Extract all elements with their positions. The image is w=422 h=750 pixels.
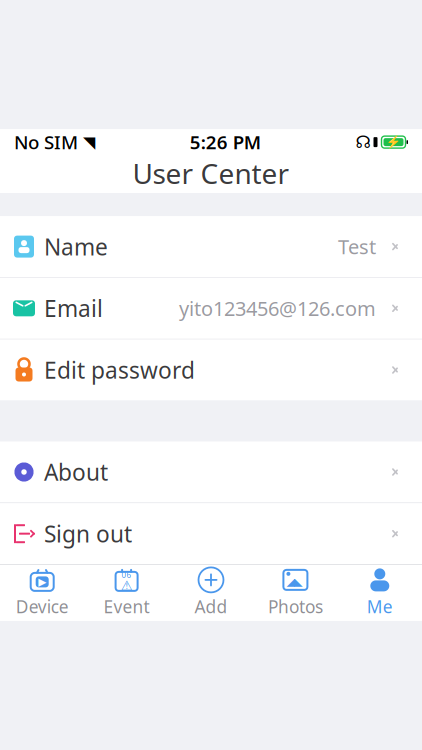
staticText: About: [44, 457, 108, 487]
button[interactable]: ◢◣: [253, 563, 338, 623]
staticText: Test: [338, 233, 376, 260]
staticText: yito123456@126.com: [179, 295, 376, 322]
button[interactable]: Sign out: [0, 503, 422, 564]
staticText: Add: [194, 595, 227, 618]
staticText: Sign out: [44, 519, 132, 549]
staticText: Name: [44, 231, 108, 262]
button[interactable]: ▶: [0, 563, 84, 623]
staticText: Event: [104, 595, 150, 618]
staticText: 5:26 PM: [190, 130, 261, 154]
staticText: Email: [44, 293, 103, 323]
staticText: ▶: [38, 576, 46, 588]
staticText: ◥: [83, 133, 95, 151]
staticText: No SIM: [14, 130, 78, 154]
staticText: ☊: [355, 132, 370, 152]
staticText: Photos: [268, 595, 323, 618]
button[interactable]: Add: [169, 563, 253, 623]
staticText: Edit password: [44, 355, 195, 385]
button[interactable]: Me: [338, 563, 422, 623]
staticText: ⚠: [121, 578, 133, 593]
staticText: Device: [16, 595, 69, 618]
staticText: Me: [367, 595, 393, 618]
button[interactable]: About: [0, 441, 422, 502]
button[interactable]: Name: [0, 216, 422, 277]
button[interactable]: Email: [0, 278, 422, 339]
staticText: 06: [122, 569, 132, 580]
staticText: User Center: [132, 154, 289, 192]
button[interactable]: Edit password: [0, 339, 422, 400]
staticText: ⚡: [386, 135, 401, 149]
button[interactable]: 06: [84, 563, 169, 623]
staticText: ◢◣: [286, 576, 302, 588]
